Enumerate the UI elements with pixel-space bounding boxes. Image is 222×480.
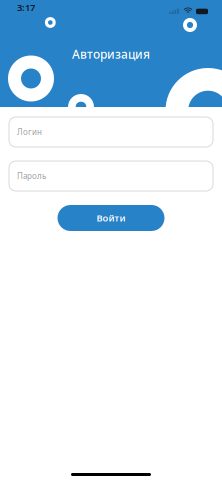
staticText: Логин [17,127,42,137]
staticText: Авторизация [72,46,150,62]
staticText: 3:17 [17,1,35,14]
button[interactable]: Пароль [9,161,213,191]
button[interactable]: Логин [9,117,213,147]
button[interactable]: Войти [57,205,164,231]
staticText: Пароль [17,171,46,181]
staticText: Войти [96,212,125,224]
